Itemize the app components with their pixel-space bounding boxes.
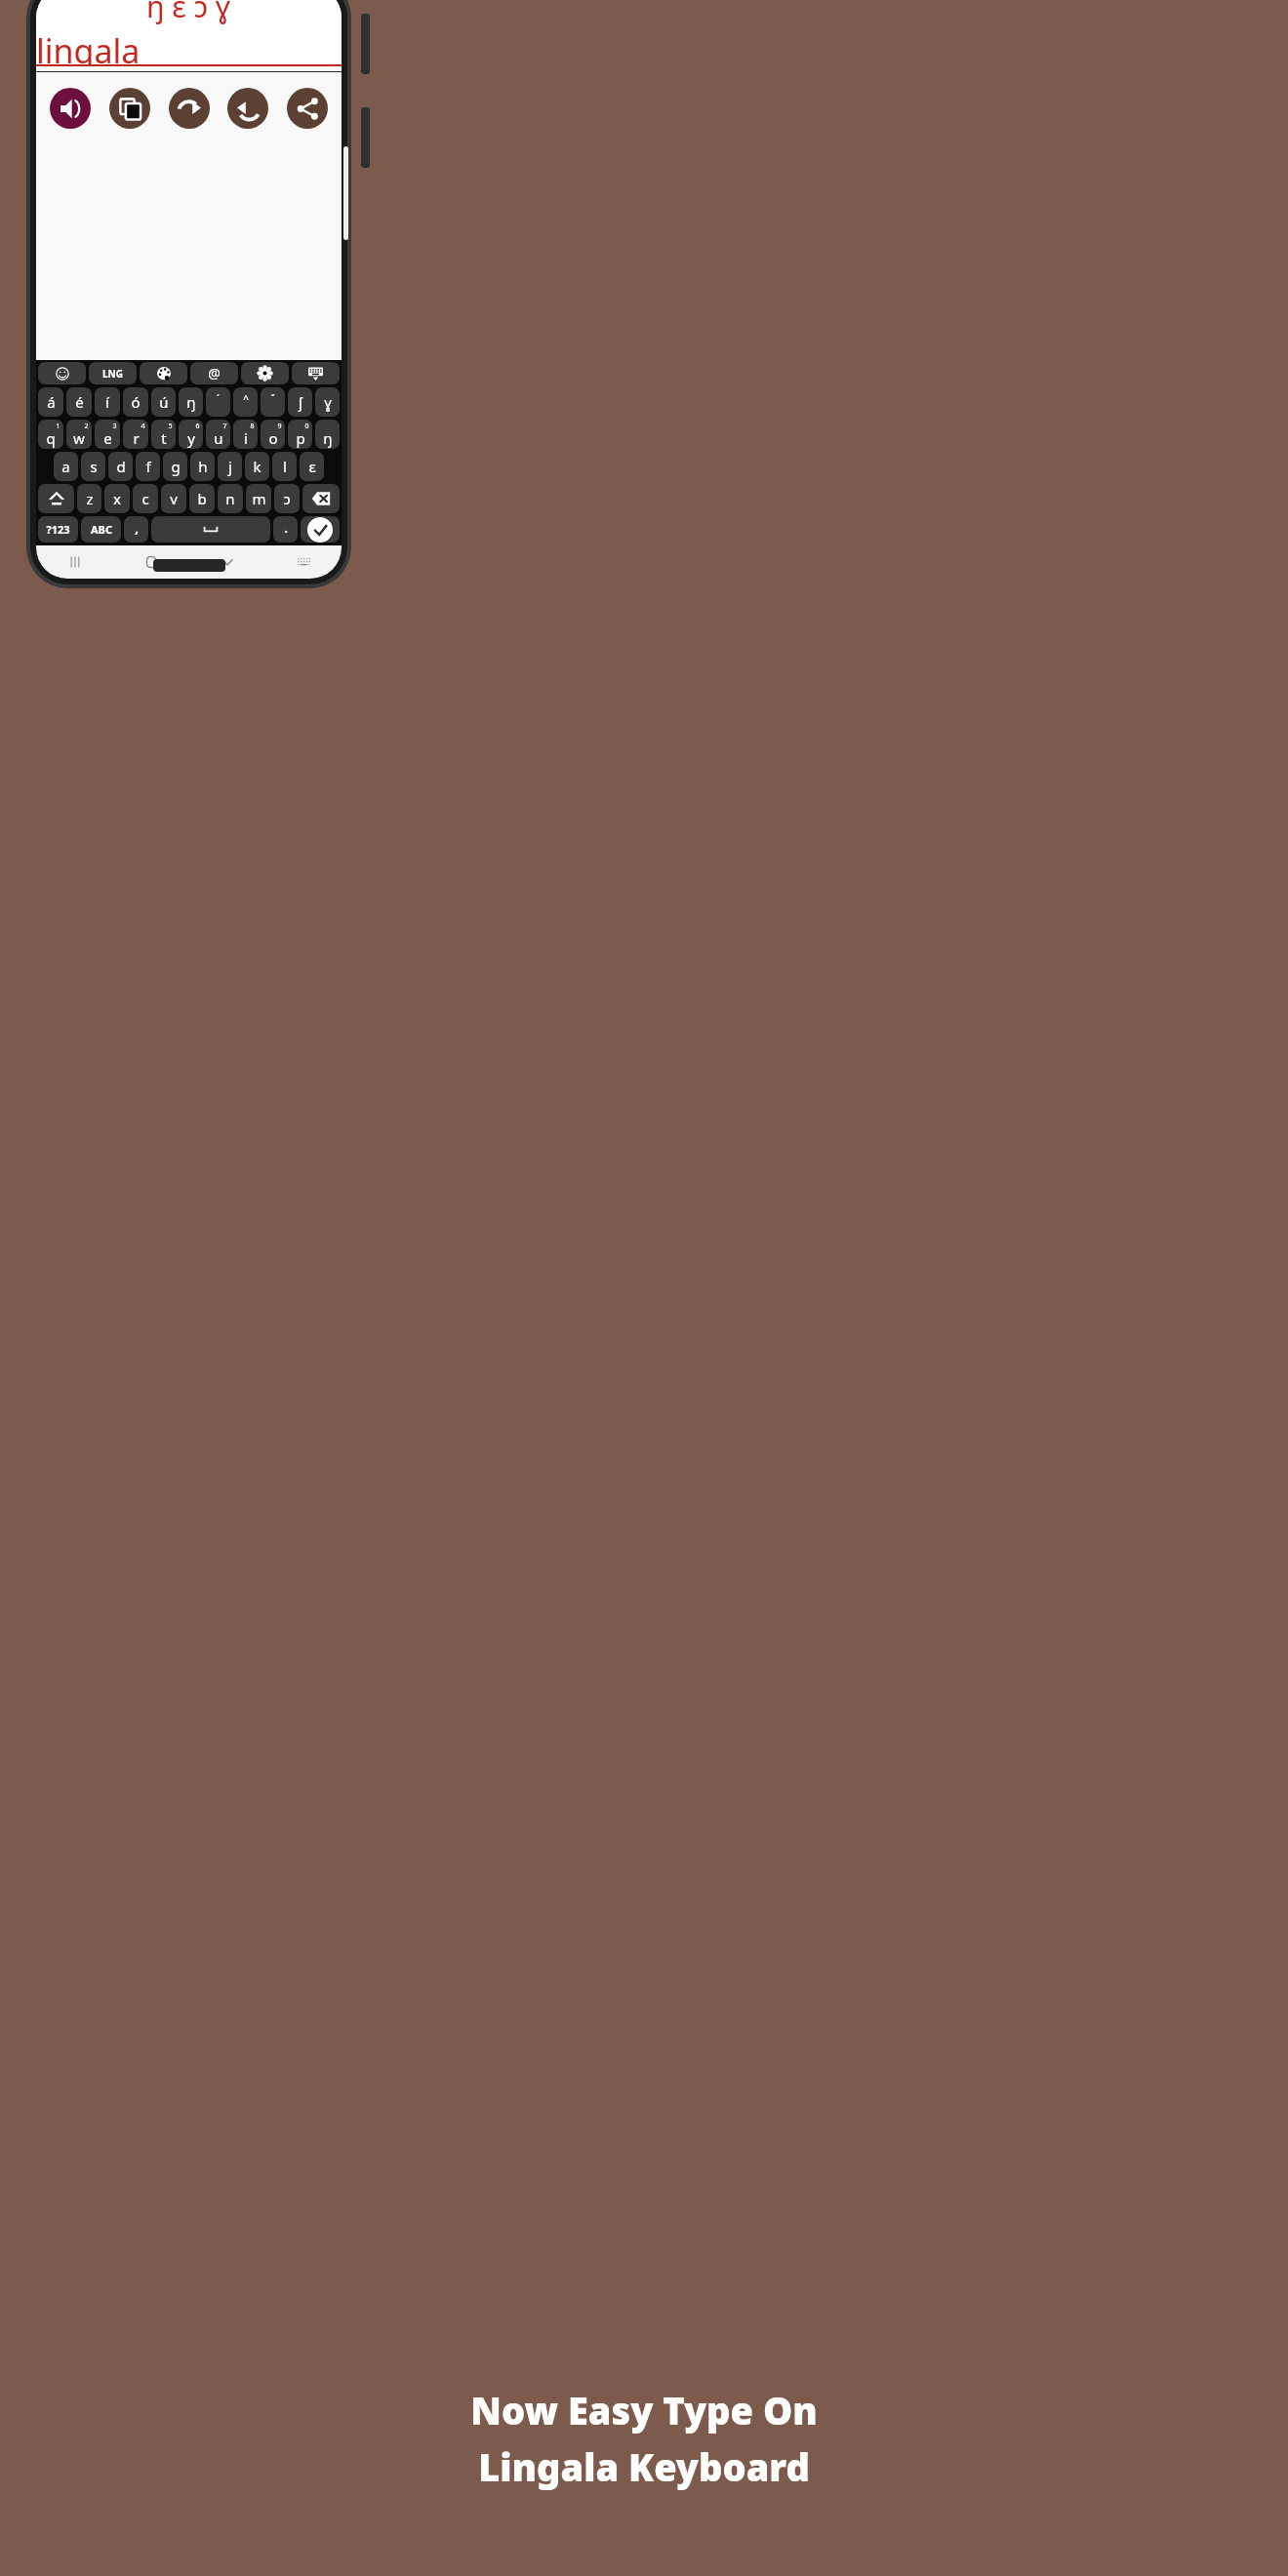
button[interactable]: 8 (233, 420, 258, 449)
button[interactable]: 3 (95, 420, 120, 449)
staticText: @ (208, 364, 221, 382)
staticText: 6 (195, 422, 200, 431)
button[interactable]: Undo (227, 88, 268, 129)
button[interactable]: gear (241, 362, 289, 384)
button[interactable]: ɛ (300, 452, 324, 481)
staticText: ABC (91, 522, 112, 537)
staticText: , (135, 519, 139, 537)
staticText: 9 (277, 422, 282, 431)
button[interactable]: 4 (123, 420, 148, 449)
staticText: g (171, 457, 181, 476)
button[interactable]: Recents (36, 545, 113, 579)
button[interactable]: 9 (261, 420, 285, 449)
staticText: i (244, 428, 248, 448)
button[interactable]: ´ (206, 387, 230, 417)
button[interactable]: j (218, 452, 242, 481)
staticText: y (187, 428, 195, 448)
staticText: 0 (304, 422, 309, 431)
staticText: ŋ (323, 428, 333, 448)
button[interactable]: c (133, 484, 158, 513)
button[interactable]: z (77, 484, 101, 513)
staticText: ŋ (186, 392, 196, 412)
button[interactable]: Copy (109, 88, 150, 129)
staticText: 1 (56, 422, 60, 431)
staticText: 2 (84, 422, 89, 431)
button[interactable]: . (273, 516, 298, 543)
button[interactable]: í (95, 387, 120, 417)
button[interactable]: 5 (151, 420, 176, 449)
button[interactable]: l (272, 452, 297, 481)
staticText: v (170, 489, 178, 508)
staticText: . (284, 519, 288, 537)
button[interactable]: ɔ (274, 484, 300, 513)
button[interactable]: kbd (292, 362, 340, 384)
staticText: p (296, 428, 305, 448)
staticText: LNG (102, 367, 123, 381)
staticText: 7 (222, 422, 227, 431)
staticText: t (161, 428, 167, 448)
button[interactable]: emoji (38, 362, 86, 384)
staticText: ɣ (324, 392, 332, 412)
button[interactable]: ˇ (261, 387, 285, 417)
button[interactable]: k (245, 452, 269, 481)
button[interactable]: á (38, 387, 63, 417)
button[interactable]: b (189, 484, 215, 513)
button[interactable]: , (124, 516, 148, 543)
staticText: Lingala Keyboard (478, 2441, 810, 2492)
staticText: ˇ (270, 392, 275, 406)
staticText: 4 (141, 422, 145, 431)
button[interactable]: Space (151, 516, 270, 543)
button[interactable]: ŋ (315, 420, 340, 449)
button[interactable]: ?123 (38, 516, 78, 543)
button[interactable]: ^ (233, 387, 258, 417)
button[interactable]: s (81, 452, 105, 481)
button[interactable]: Shift (38, 484, 74, 513)
button[interactable]: ɣ (315, 387, 340, 417)
staticText: f (145, 457, 151, 476)
staticText: 8 (250, 422, 255, 431)
button[interactable]: Redo (169, 88, 210, 129)
button[interactable]: Keyboard (265, 545, 342, 579)
staticText: Now Easy Type On (470, 2385, 818, 2435)
staticText: w (73, 428, 85, 448)
button[interactable]: f (136, 452, 160, 481)
button[interactable]: 6 (179, 420, 203, 449)
staticText: ?123 (46, 522, 70, 537)
button[interactable]: ŋ (179, 387, 203, 417)
button[interactable]: LNG (89, 362, 137, 384)
button[interactable]: 1 (38, 420, 63, 449)
button[interactable]: Home (113, 545, 189, 579)
button[interactable]: Speak (50, 88, 91, 129)
button[interactable]: x (104, 484, 130, 513)
staticText: r (133, 428, 140, 448)
button[interactable]: h (190, 452, 215, 481)
button[interactable]: Share (287, 88, 328, 129)
button[interactable]: é (66, 387, 92, 417)
button[interactable]: Enter (301, 516, 340, 543)
staticText: í (105, 392, 109, 412)
staticText: b (197, 489, 207, 508)
button[interactable]: @ (190, 362, 238, 384)
staticText: z (86, 489, 94, 508)
staticText: ú (159, 392, 169, 412)
staticText: o (268, 428, 278, 448)
staticText: ó (131, 392, 141, 412)
button[interactable]: a (54, 452, 78, 481)
button[interactable]: Backspace (302, 484, 340, 513)
button[interactable]: 2 (66, 420, 92, 449)
button[interactable]: m (246, 484, 271, 513)
button[interactable]: d (108, 452, 133, 481)
button[interactable]: n (218, 484, 243, 513)
staticText: k (253, 457, 262, 476)
button[interactable]: ABC (81, 516, 121, 543)
button[interactable]: g (163, 452, 187, 481)
button[interactable]: 7 (206, 420, 230, 449)
button[interactable]: palette (140, 362, 187, 384)
button[interactable]: ú (151, 387, 176, 417)
staticText: u (214, 428, 223, 448)
button[interactable]: ó (123, 387, 148, 417)
button[interactable]: ʃ (288, 387, 312, 417)
button[interactable]: 0 (288, 420, 312, 449)
button[interactable]: v (161, 484, 186, 513)
button[interactable]: Hide keyboard (189, 545, 265, 579)
